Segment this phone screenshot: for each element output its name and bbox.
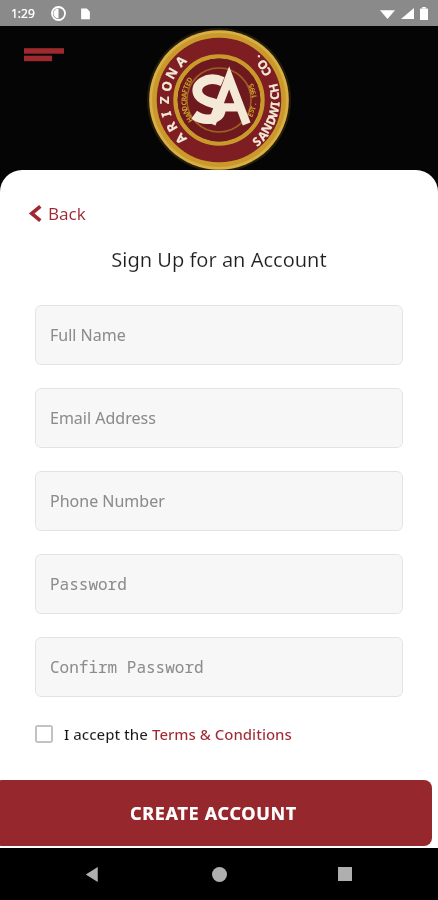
staticText: S [247,107,257,114]
staticText: N [180,106,192,115]
staticText: O [156,78,177,94]
staticText: D [179,104,191,112]
staticText: A [179,92,190,98]
staticText: A [253,126,272,144]
staticText: Full Name [50,324,126,346]
button[interactable]: Password [35,554,403,614]
staticText: D [261,113,280,127]
button[interactable]: CREATE ACCOUNT [0,780,432,846]
staticText: C [179,100,190,106]
button[interactable]: Phone Number [35,471,403,531]
staticText: E [246,111,256,119]
staticText: 1:29 [11,5,35,21]
staticText: S [248,133,264,149]
staticText: I accept the [64,724,152,744]
staticText: D [184,75,196,85]
staticText: A [183,111,194,119]
staticText: F [180,88,190,94]
button[interactable]: Menu [16,38,60,72]
staticText: N [161,64,182,82]
staticText: Email Address [50,407,156,429]
staticText: R [161,119,182,135]
staticText: W [264,104,282,120]
staticText: A [171,51,190,70]
staticText: H [264,81,282,95]
button[interactable]: Terms & Conditions [152,724,292,744]
staticText: C [266,91,282,101]
button[interactable]: Home [199,854,239,894]
button[interactable]: Full Name [35,305,403,365]
staticText: I [266,101,283,107]
button[interactable]: Email Address [35,388,403,448]
staticText: A [171,129,190,148]
staticText: T [248,104,259,111]
staticText: Sign Up for an Account [0,246,438,273]
staticText: H [184,114,196,124]
staticText: R [179,96,190,102]
staticText: Z [155,96,173,104]
staticText: CREATE ACCOUNT [130,801,297,826]
staticText: 5 [246,81,257,89]
staticText: T [181,83,192,91]
staticText: 1 [249,93,260,99]
button[interactable]: Back [24,198,92,229]
staticText: C [257,64,275,79]
staticText: E [183,80,193,88]
staticText: Confirm Password [50,656,204,678]
staticText: 9 [247,85,258,93]
staticText: Password [50,573,127,595]
button[interactable]: Confirm Password [35,637,403,697]
staticText: Back [48,202,86,225]
button[interactable]: Back [72,854,112,894]
staticText: 9 [248,88,259,95]
staticText: O [253,56,271,74]
staticText: . [249,102,259,106]
staticText: Phone Number [50,490,165,512]
staticText: . [249,52,263,66]
staticText: N [257,120,275,136]
button[interactable]: I accept the [28,718,299,750]
button[interactable]: Recent apps [325,854,365,894]
staticText: I [156,109,175,119]
